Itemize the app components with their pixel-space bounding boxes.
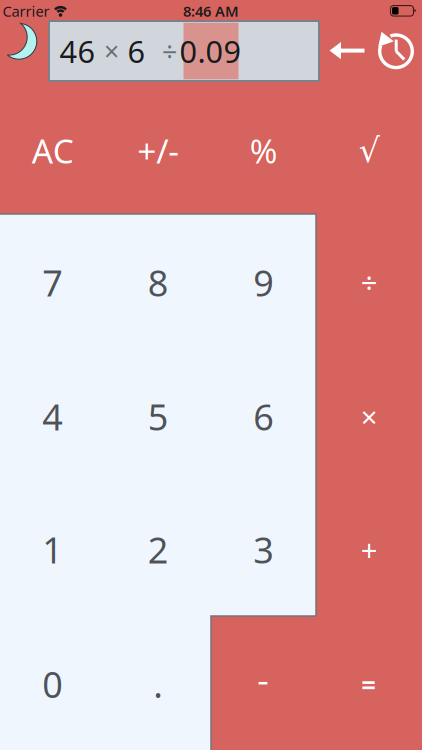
staticText: ×	[104, 33, 119, 69]
button[interactable]: ×	[317, 349, 422, 483]
staticText: 0	[42, 660, 63, 708]
button[interactable]: 4	[0, 349, 105, 483]
staticText: √	[359, 132, 380, 169]
button[interactable]: +	[317, 482, 422, 616]
button[interactable]: √	[317, 119, 422, 181]
staticText: 8:46 AM	[183, 1, 239, 21]
button[interactable]: %	[211, 119, 316, 181]
staticText: 6	[253, 393, 274, 440]
button[interactable]: 9	[211, 215, 316, 349]
button[interactable]: History	[374, 29, 418, 73]
button[interactable]: ÷	[317, 215, 422, 349]
button[interactable]: Minus	[211, 617, 316, 750]
button[interactable]: 6	[211, 349, 316, 483]
staticText: 3	[253, 526, 274, 573]
staticText: 0.09	[179, 31, 241, 71]
button[interactable]: AC	[0, 119, 105, 181]
staticText: 9	[253, 259, 274, 306]
staticText: 5	[148, 393, 169, 440]
button[interactable]: 8	[106, 215, 211, 349]
staticText: 4	[42, 393, 63, 440]
button[interactable]: 7	[0, 215, 105, 349]
staticText: 6	[127, 31, 145, 71]
staticText: +/-	[137, 128, 179, 173]
staticText: 7	[42, 259, 63, 306]
staticText: ÷	[162, 33, 177, 69]
staticText: AC	[32, 128, 74, 173]
button[interactable]: 3	[211, 482, 316, 616]
staticText: ×	[361, 397, 378, 436]
button[interactable]: .	[106, 617, 211, 750]
button[interactable]: +/-	[106, 119, 211, 181]
staticText: 46	[59, 31, 95, 71]
button[interactable]: 5	[106, 349, 211, 483]
staticText: 1	[42, 526, 63, 573]
staticText: 2	[148, 526, 169, 573]
staticText: ÷	[361, 263, 378, 302]
button[interactable]: Backspace	[329, 42, 364, 60]
staticText: Carrier	[2, 1, 49, 21]
button[interactable]: 2	[106, 482, 211, 616]
button[interactable]: 0	[0, 617, 105, 750]
staticText: 8	[148, 259, 169, 306]
staticText: .	[153, 660, 163, 708]
staticText: +	[361, 530, 378, 569]
button[interactable]: 1	[0, 482, 105, 616]
button[interactable]: Equals	[317, 617, 422, 750]
button[interactable]: Dark mode	[5, 20, 45, 64]
staticText: %	[250, 128, 278, 173]
